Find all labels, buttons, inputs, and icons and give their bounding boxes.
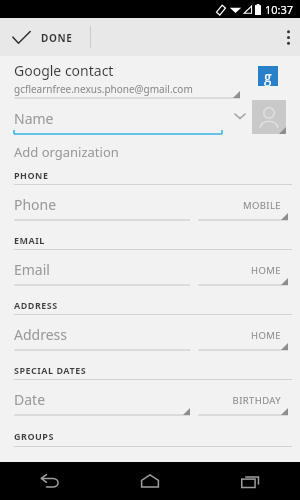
- button[interactable]: Add organization: [0, 138, 300, 166]
- staticText: Name: [14, 109, 54, 128]
- button[interactable]: MOBILE: [198, 189, 288, 221]
- staticText: Address: [14, 325, 67, 344]
- staticText: MOBILE: [242, 199, 281, 212]
- staticText: HOME: [251, 264, 281, 277]
- button[interactable]: Email: [0, 254, 190, 284]
- button[interactable]: Name: [0, 102, 222, 134]
- staticText: gcflearnfree.nexus.phone@gmail.com: [14, 82, 193, 96]
- staticText: 10:37: [265, 2, 294, 17]
- button[interactable]: DONE: [0, 30, 83, 45]
- staticText: DONE: [41, 31, 73, 45]
- staticText: BIRTHDAY: [232, 394, 281, 407]
- button[interactable]: HOME: [198, 254, 288, 286]
- staticText: ADDRESS: [14, 299, 58, 311]
- staticText: Phone: [14, 195, 57, 214]
- staticText: Google contact: [14, 61, 114, 80]
- staticText: Email: [14, 260, 50, 279]
- staticText: g: [264, 67, 272, 86]
- button[interactable]: Phone: [0, 189, 190, 219]
- button[interactable]: Date: [0, 384, 190, 414]
- staticText: Date: [14, 390, 46, 409]
- button[interactable]: BIRTHDAY: [198, 384, 288, 416]
- staticText: EMAIL: [14, 234, 45, 246]
- button[interactable]: Google contact: [0, 56, 300, 100]
- staticText: SPECIAL DATES: [14, 364, 87, 376]
- staticText: HOME: [251, 329, 281, 342]
- staticText: PHONE: [14, 169, 49, 181]
- button[interactable]: Back: [0, 462, 100, 500]
- staticText: Add organization: [14, 143, 119, 161]
- button[interactable]: Expand name fields: [232, 108, 248, 124]
- button[interactable]: GROUPS: [0, 426, 300, 446]
- button[interactable]: Recent apps: [200, 462, 300, 500]
- button[interactable]: More options: [277, 22, 300, 53]
- button[interactable]: Add contact photo: [252, 100, 286, 134]
- button[interactable]: HOME: [198, 319, 288, 351]
- button[interactable]: Home: [100, 462, 200, 500]
- staticText: GROUPS: [14, 430, 54, 442]
- button[interactable]: Address: [0, 319, 190, 349]
